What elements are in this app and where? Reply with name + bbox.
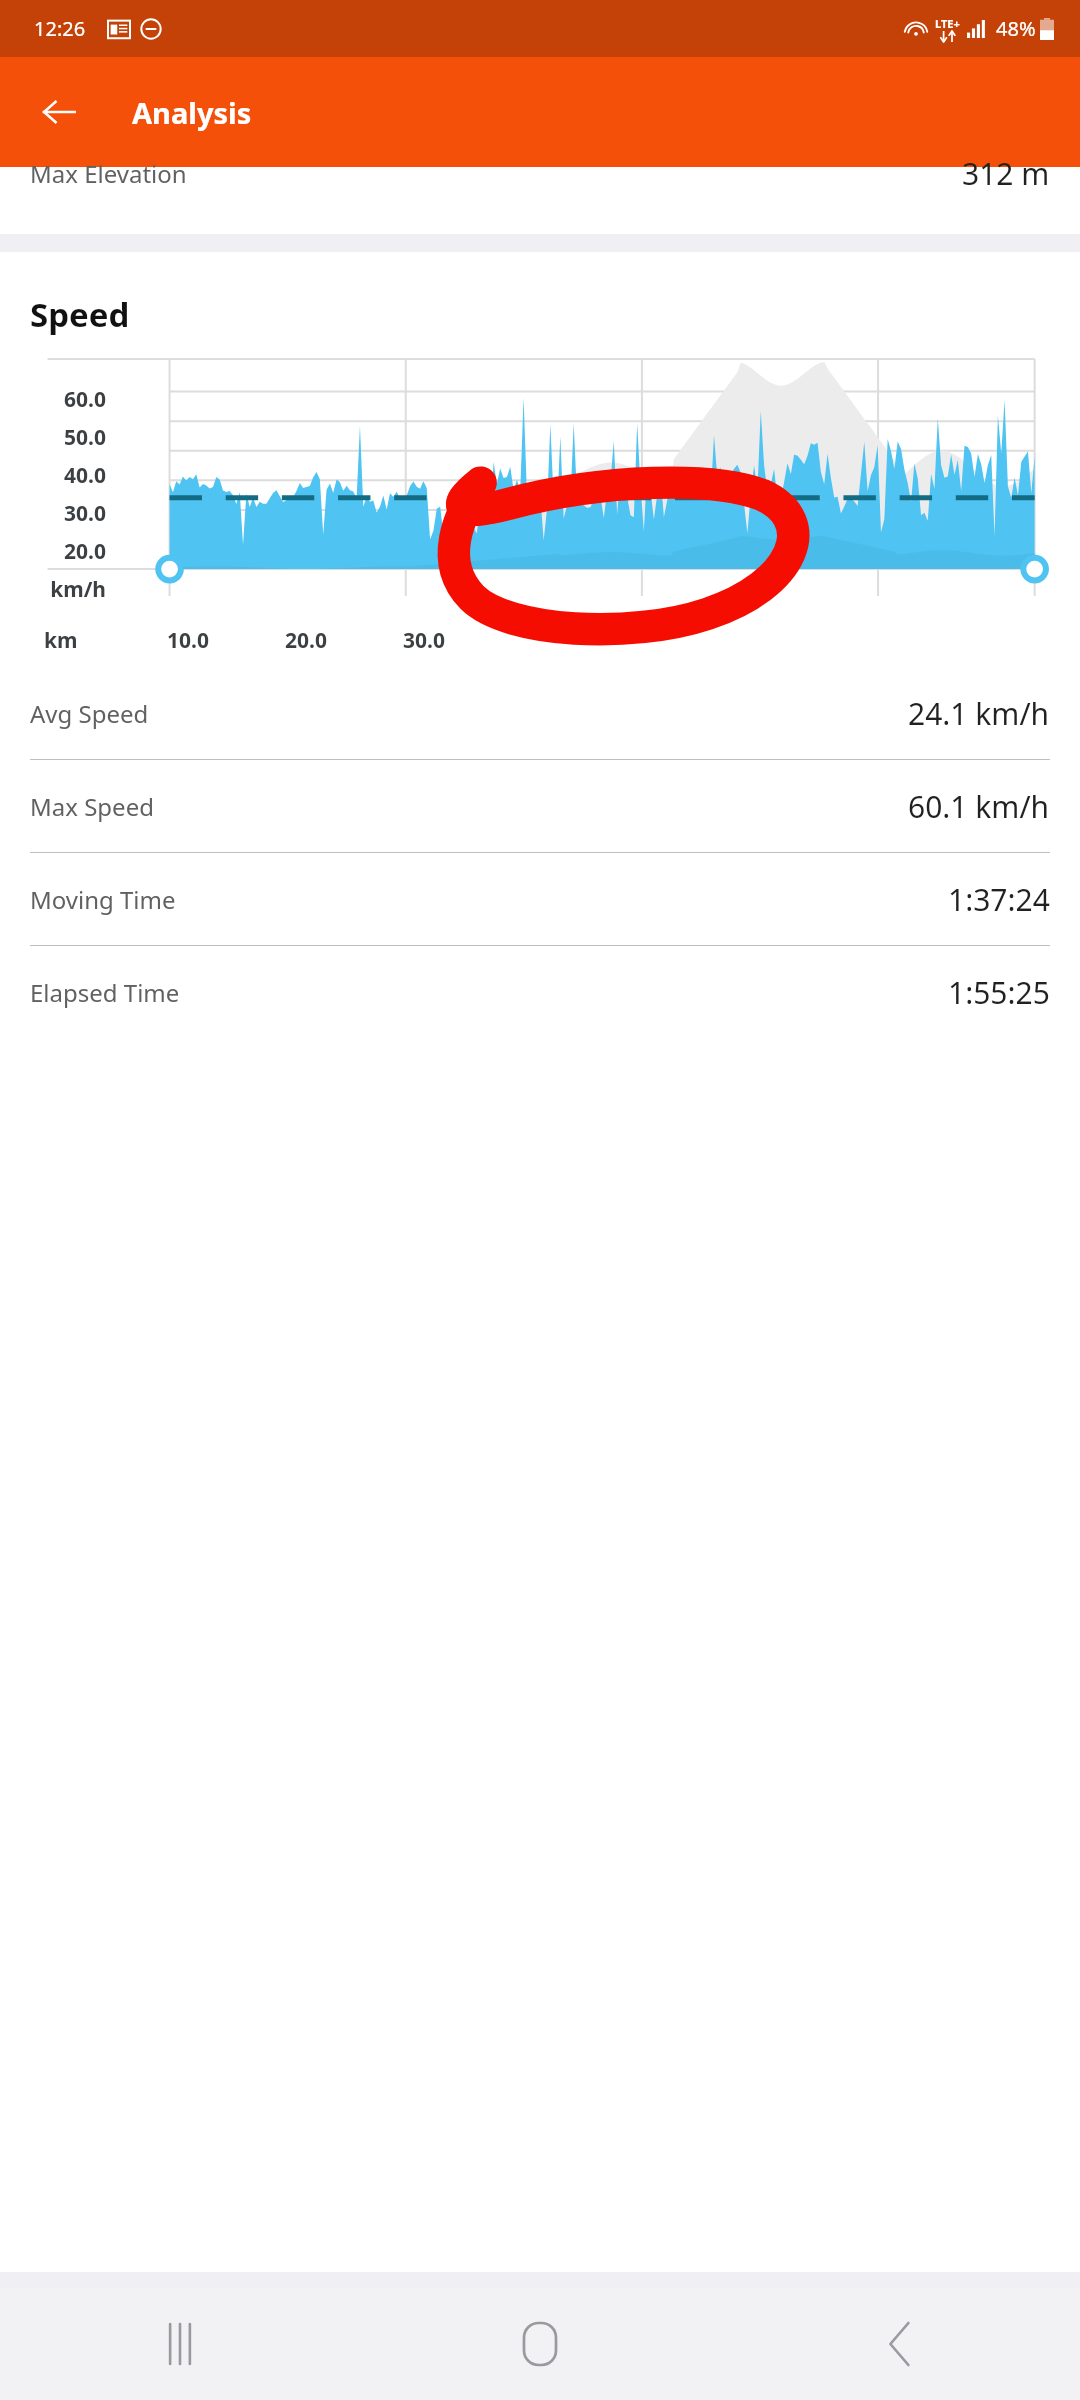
staticText: 40.0 — [14, 461, 106, 490]
staticText: 60.1 km/h — [908, 786, 1050, 827]
staticText: 12:26 — [34, 15, 86, 42]
staticText: Max Speed — [30, 790, 154, 823]
staticText: 24.1 km/h — [908, 693, 1050, 734]
staticText: Avg Speed — [30, 697, 149, 730]
staticText: 20.0 — [285, 626, 327, 655]
staticText: 50.0 — [14, 423, 106, 452]
button[interactable]: Elapsed Time — [0, 945, 1080, 1038]
button[interactable]: Home — [360, 2288, 720, 2400]
staticText: 1:55:25 — [948, 972, 1050, 1013]
button[interactable]: Max Elevation — [30, 153, 1050, 194]
staticText: km/h — [14, 575, 106, 604]
staticText: 30.0 — [403, 626, 445, 655]
staticText: 48% — [996, 15, 1036, 42]
staticText: Moving Time — [30, 883, 176, 916]
staticText: 10.0 — [167, 626, 209, 655]
staticText: 60.0 — [14, 385, 106, 414]
button[interactable]: Back — [720, 2288, 1080, 2400]
button[interactable]: Moving Time — [0, 852, 1080, 945]
button[interactable]: Max Speed — [0, 759, 1080, 852]
staticText: Max Elevation — [30, 157, 187, 190]
staticText: 1:37:24 — [948, 879, 1050, 920]
staticText: Analysis — [132, 93, 252, 132]
staticText: 312 m — [962, 153, 1050, 194]
button[interactable]: Recents — [0, 2288, 360, 2400]
button[interactable]: Back — [28, 81, 90, 143]
staticText: km — [44, 626, 78, 655]
staticText: Speed — [30, 292, 130, 337]
staticText: Elapsed Time — [30, 976, 180, 1009]
staticText: 30.0 — [14, 499, 106, 528]
button[interactable]: Avg Speed — [0, 667, 1080, 759]
staticText: LTE+ — [935, 16, 960, 31]
staticText: 20.0 — [14, 537, 106, 566]
